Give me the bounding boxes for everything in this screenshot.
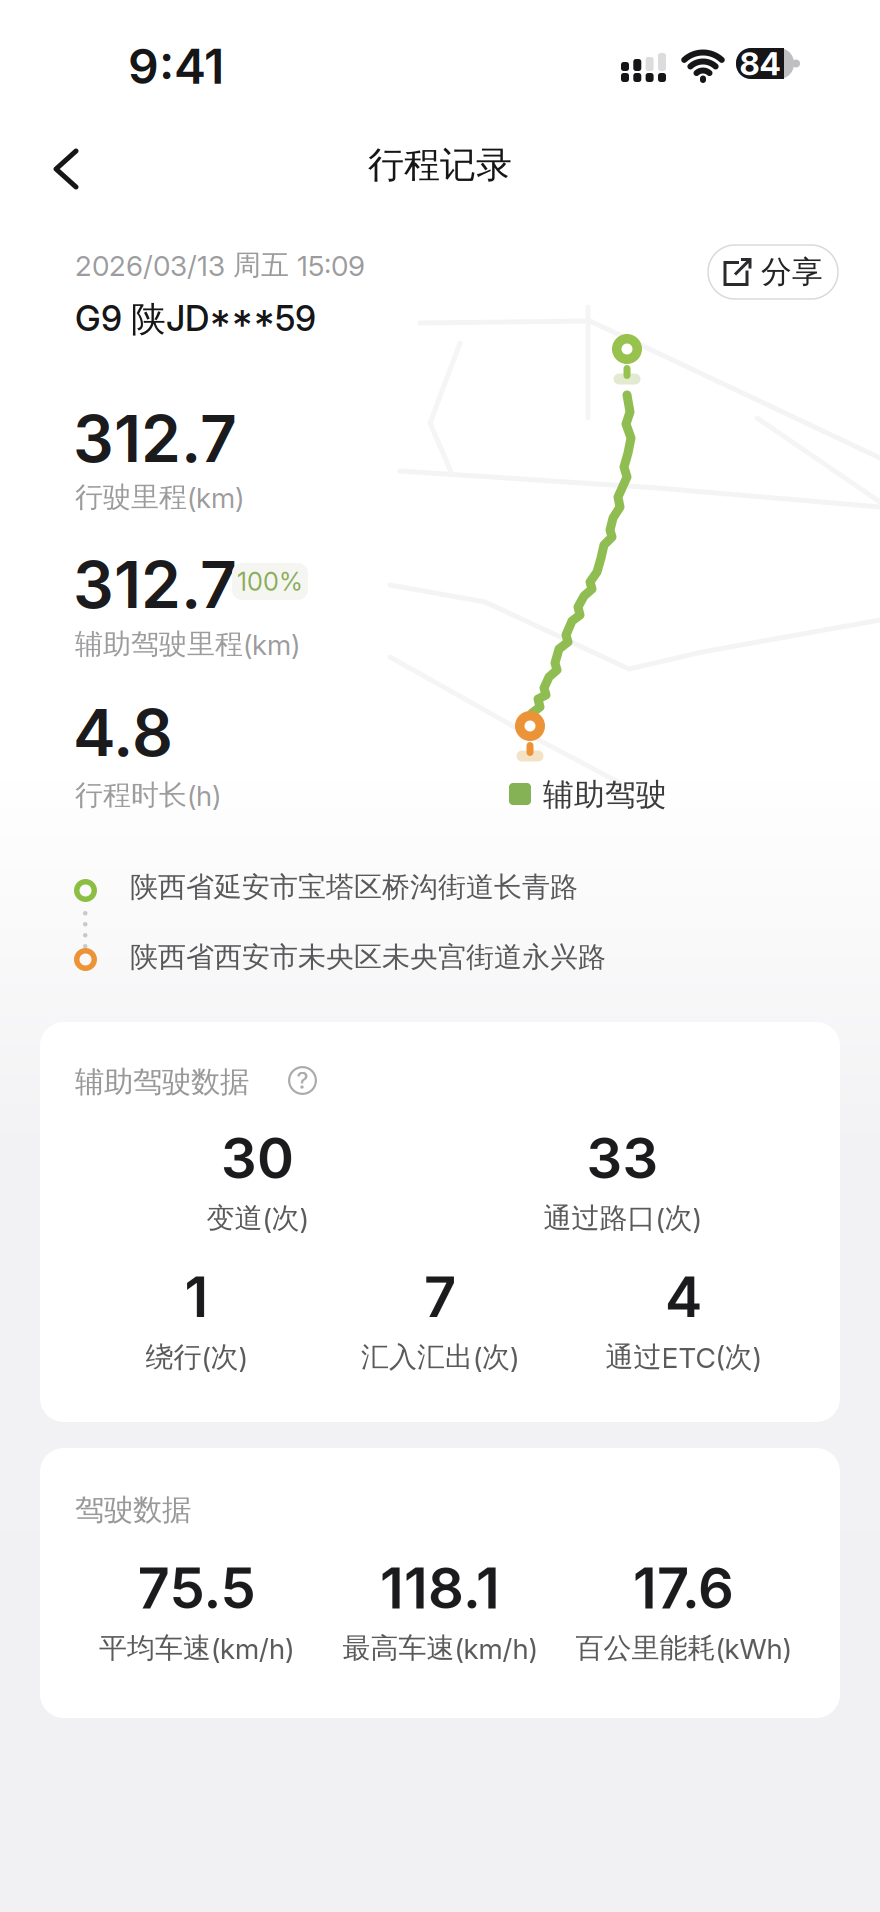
staticText: 辅助驾驶数据 [75,1064,249,1100]
staticText: 118.1 [380,1555,500,1621]
staticText: 驾驶数据 [75,1492,191,1528]
staticText: 陕西省延安市宝塔区桥沟街道长青路 [130,870,578,904]
staticText: 分享 [761,253,823,291]
staticText: 7 [424,1264,456,1330]
staticText: 辅助驾驶里程(km) [75,627,300,661]
button[interactable]: 分享 [708,245,838,299]
staticText: 行程记录 [368,143,512,187]
staticText: 30 [221,1125,294,1191]
button[interactable]: Back [53,148,79,190]
staticText: 84 [739,45,780,82]
staticText: 行驶里程(km) [75,480,244,514]
staticText: 75.5 [137,1555,255,1621]
staticText: 4 [665,1264,702,1330]
staticText: 4.8 [73,695,173,770]
staticText: 100% [237,567,303,596]
staticText: 变道(次) [206,1201,308,1235]
staticText: 辅助驾驶 [543,776,667,814]
staticText: 33 [586,1125,658,1191]
staticText: 百公里能耗(kWh) [575,1631,791,1665]
staticText: 通过ETC(次) [605,1340,761,1374]
staticText: 1 [184,1264,208,1330]
staticText: ? [296,1067,308,1094]
staticText: 17.6 [633,1555,734,1621]
staticText: 9:41 [128,38,224,95]
staticText: 312.7 [73,547,237,622]
staticText: 2026/03/13 周五 15:09 [75,248,365,282]
staticText: 312.7 [73,401,237,476]
staticText: 汇入汇出(次) [361,1340,519,1374]
staticText: 陕西省西安市未央区未央宫街道永兴路 [130,940,606,974]
staticText: G9 陕JD***59 [75,298,316,341]
staticText: 绕行(次) [145,1340,247,1374]
button[interactable]: 辅助驾驶数据说明 [288,1066,317,1095]
staticText: 最高车速(km/h) [342,1631,537,1665]
staticText: 平均车速(km/h) [99,1631,294,1665]
staticText: 通过路口(次) [543,1201,701,1235]
staticText: 行程时长(h) [75,778,221,812]
